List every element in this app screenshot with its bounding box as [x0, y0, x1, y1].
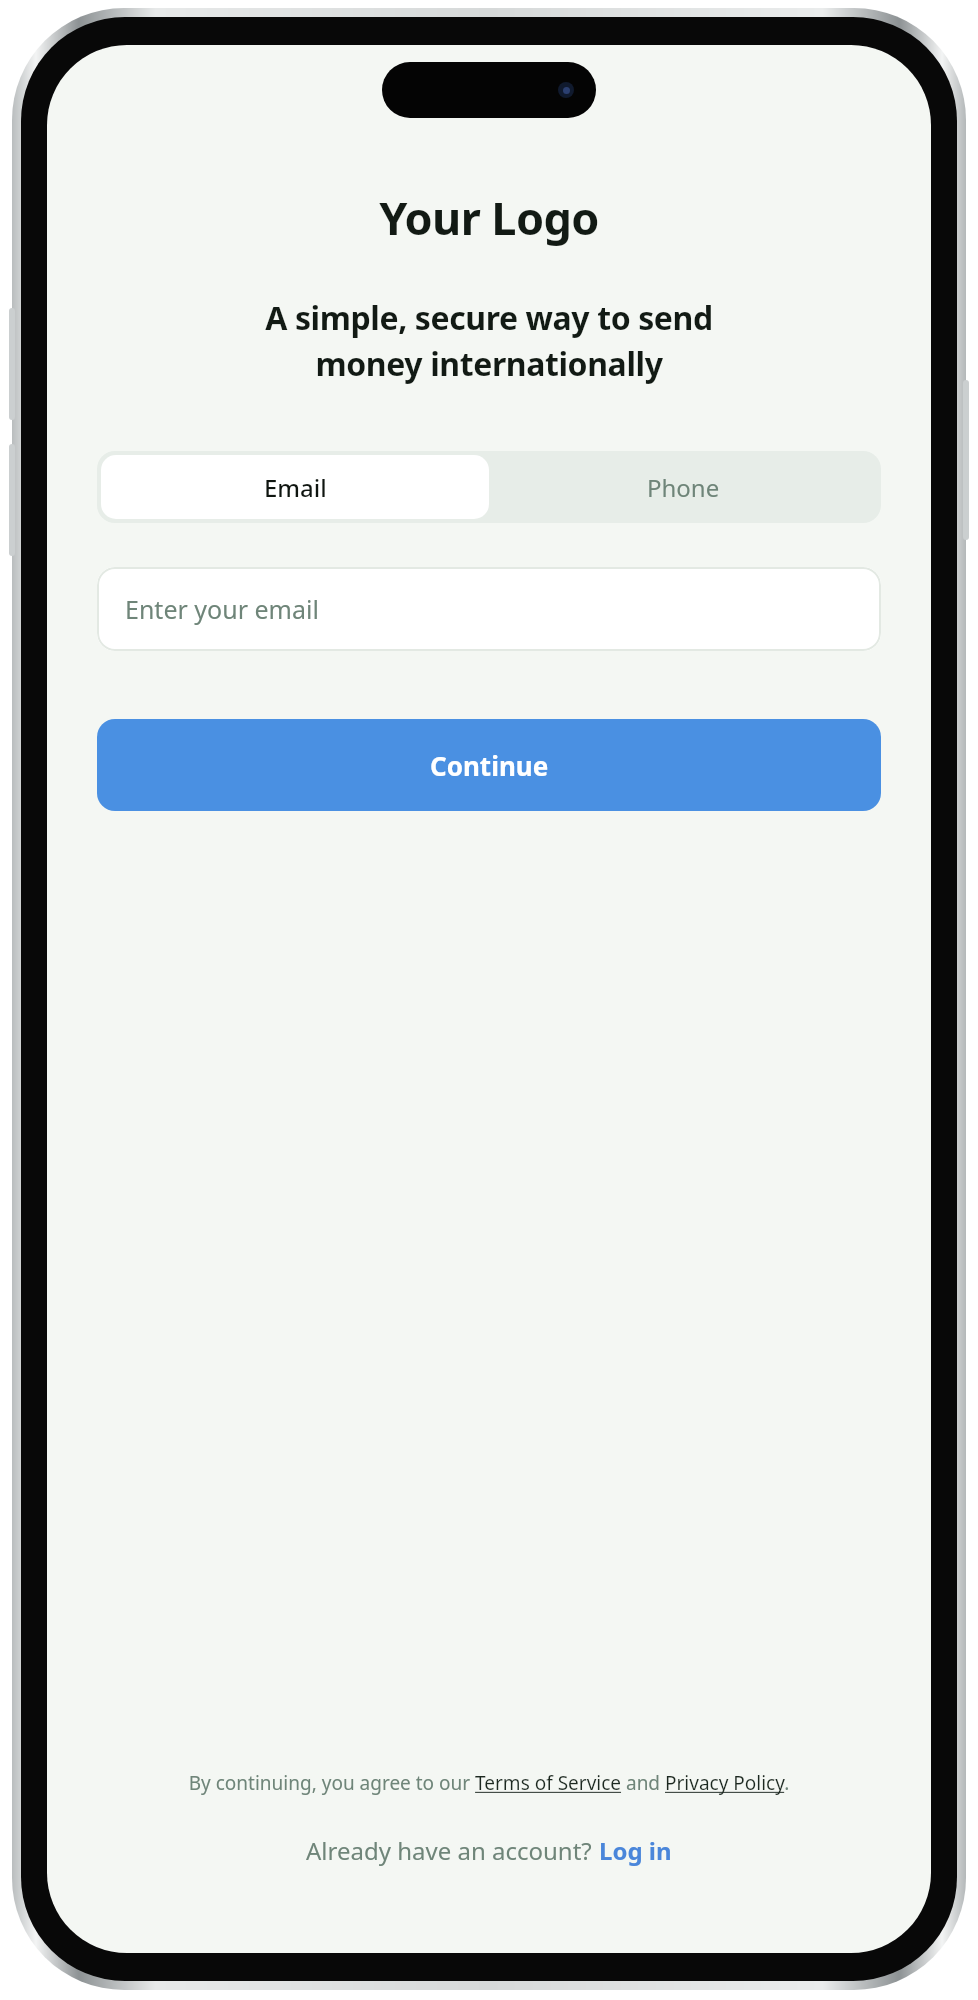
- staticText: A simple, secure way to send money inter…: [67, 296, 911, 385]
- button[interactable]: Phone: [489, 455, 877, 519]
- staticText: Email: [264, 471, 327, 504]
- button[interactable]: Email: [101, 455, 489, 519]
- staticText: Log in: [599, 1834, 672, 1867]
- staticText: By continuing, you agree to our Terms of…: [93, 1770, 885, 1796]
- button[interactable]: Continue: [97, 719, 881, 811]
- button[interactable]: Log in: [599, 1834, 672, 1867]
- staticText: Your Logo: [379, 187, 599, 248]
- staticText: Already have an account?: [306, 1834, 599, 1867]
- staticText: Enter your email: [125, 592, 319, 626]
- staticText: Continue: [430, 748, 549, 783]
- button[interactable]: Enter your email: [97, 567, 881, 651]
- button[interactable]: By continuing, you agree to our Terms of…: [93, 1770, 885, 1796]
- staticText: Phone: [647, 471, 720, 504]
